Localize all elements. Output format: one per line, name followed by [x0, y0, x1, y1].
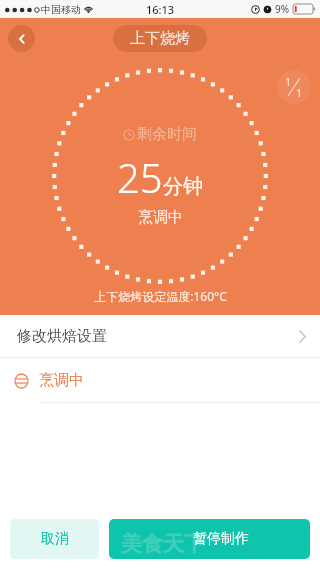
staticText: 上下烧烤	[130, 29, 190, 48]
staticText: 取消	[41, 530, 69, 548]
staticText: 分钟	[163, 174, 203, 199]
staticText: 剩余时间	[137, 125, 197, 144]
button[interactable]: Step 1 of 1	[277, 70, 311, 104]
staticText: 烹调中	[138, 208, 183, 227]
button[interactable]: 修改烘焙设置	[0, 315, 320, 358]
button[interactable]: Back	[8, 25, 35, 52]
staticText: 上下烧烤设定温度:160°C	[94, 288, 227, 304]
staticText: 修改烘焙设置	[17, 327, 107, 346]
staticText: 美食天下	[121, 531, 205, 557]
staticText: 9%	[275, 2, 290, 16]
staticText: 25	[117, 150, 163, 204]
staticText: 16:13	[146, 2, 175, 17]
staticText: 烹调中	[39, 371, 84, 390]
staticText: 暂停制作	[193, 530, 249, 548]
button[interactable]: 取消	[10, 519, 99, 559]
button[interactable]: 美食天下	[109, 519, 310, 559]
button[interactable]: 烹调中	[0, 358, 320, 403]
staticText: 1	[285, 74, 292, 89]
staticText: 中国移动	[41, 3, 81, 16]
button[interactable]: 上下烧烤	[113, 25, 207, 52]
staticText: 1	[296, 85, 303, 100]
